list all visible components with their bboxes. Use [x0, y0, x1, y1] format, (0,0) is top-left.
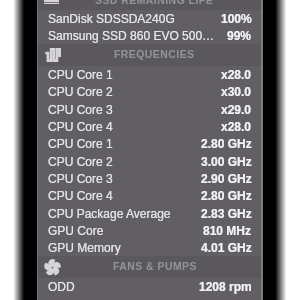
- staticText: 810 MHz: [203, 224, 252, 237]
- button[interactable]: ODD: [37, 278, 262, 295]
- staticText: FREQUENCIES: [114, 49, 195, 61]
- staticText: x28.0: [221, 68, 252, 81]
- staticText: CPU Core 3: [48, 172, 113, 185]
- other: Frequencies: [44, 48, 61, 62]
- button[interactable]: SSD REMAINING LIFE: [37, 0, 262, 10]
- staticText: 2.90 GHz: [201, 172, 252, 185]
- button[interactable]: Samsung SSD 860 EVO 500…: [37, 27, 262, 44]
- staticText: x30.0: [221, 85, 252, 98]
- staticText: GPU Core: [48, 224, 104, 237]
- staticText: SSD REMAINING LIFE: [95, 0, 214, 5]
- staticText: FANS & PUMPS: [113, 261, 197, 273]
- staticText: CPU Core 4: [48, 120, 113, 133]
- staticText: 1208 rpm: [199, 280, 252, 293]
- button[interactable]: SanDisk SDSSDA240G: [37, 10, 262, 27]
- staticText: CPU Core 1: [48, 68, 113, 81]
- staticText: Samsung SSD 860 EVO 500…: [48, 29, 215, 42]
- staticText: GPU Memory: [48, 241, 121, 254]
- button[interactable]: CPU Core 2: [37, 83, 262, 100]
- staticText: 2.80 GHz: [201, 189, 252, 202]
- button[interactable]: GPU Core: [37, 222, 262, 239]
- staticText: ODD: [48, 280, 75, 293]
- staticText: CPU Core 2: [48, 85, 113, 98]
- button[interactable]: CPU Package Average: [37, 204, 262, 222]
- button[interactable]: GPU Memory: [37, 239, 262, 256]
- staticText: CPU Core 1: [48, 137, 113, 150]
- staticText: 2.83 GHz: [201, 207, 252, 220]
- button[interactable]: CPU Core 1: [37, 66, 262, 83]
- other: Fans and pumps: [44, 259, 61, 276]
- staticText: CPU Core 2: [48, 155, 113, 168]
- staticText: CPU Package Average: [48, 207, 171, 220]
- staticText: 100%: [221, 12, 252, 25]
- button[interactable]: CPU Core 4: [37, 187, 262, 204]
- staticText: 2.80 GHz: [201, 137, 252, 150]
- staticText: x29.0: [221, 103, 252, 116]
- staticText: 3.00 GHz: [201, 155, 252, 168]
- button[interactable]: CPU Core 3: [37, 100, 262, 118]
- button[interactable]: FREQUENCIES: [37, 44, 262, 66]
- button[interactable]: FANS & PUMPS: [37, 256, 262, 278]
- staticText: CPU Core 3: [48, 103, 113, 116]
- staticText: 4.01 GHz: [201, 241, 252, 254]
- button[interactable]: CPU Core 3: [37, 170, 262, 187]
- button[interactable]: CPU Core 4: [37, 118, 262, 135]
- staticText: SanDisk SDSSDA240G: [48, 12, 175, 25]
- staticText: CPU Core 4: [48, 189, 113, 202]
- staticText: 99%: [227, 29, 252, 42]
- other: Storage: [44, 0, 59, 5]
- button[interactable]: CPU Core 2: [37, 152, 262, 170]
- staticText: x28.0: [221, 120, 252, 133]
- button[interactable]: CPU Core 1: [37, 135, 262, 152]
